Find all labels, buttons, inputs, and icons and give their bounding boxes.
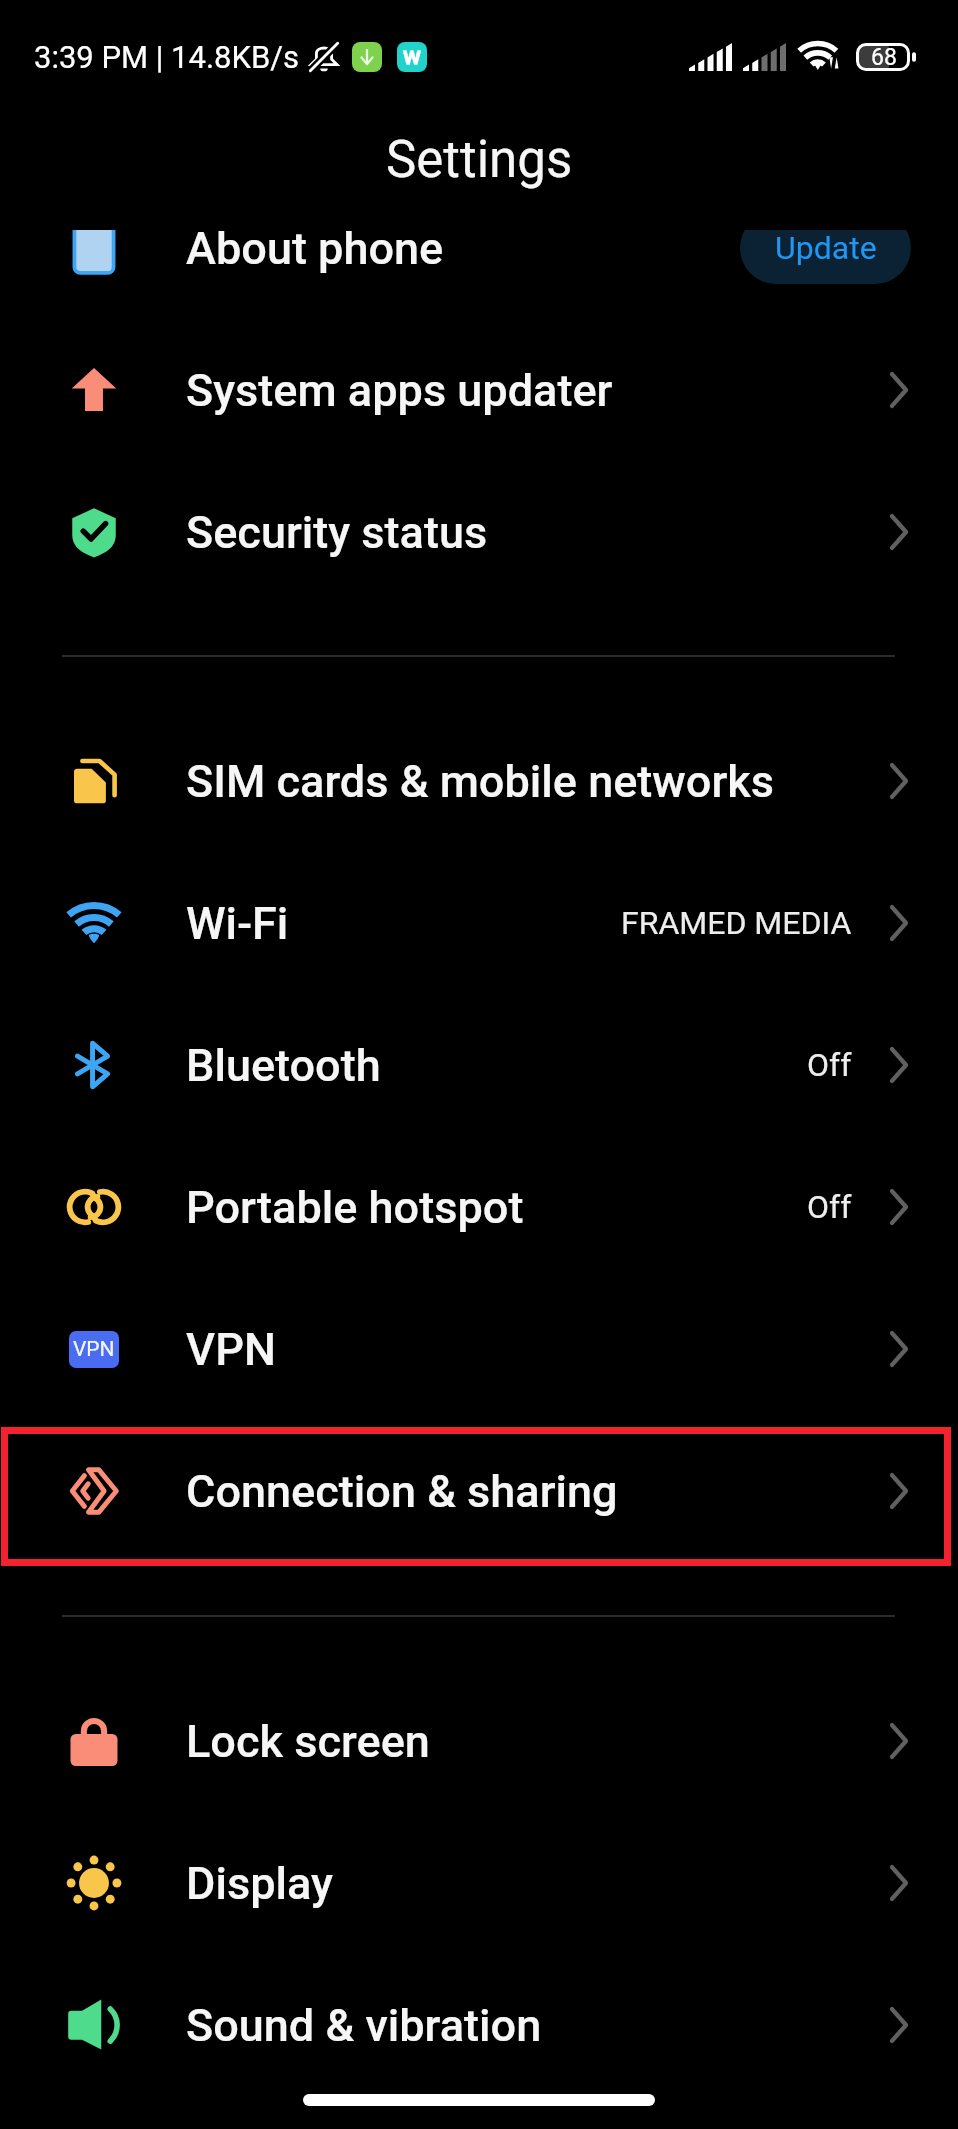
other: Silent mode [305, 38, 343, 76]
staticText: 3:39 PM | 14.8KB/s [34, 39, 300, 75]
other: Open SIM cards & mobile networks [889, 763, 909, 799]
other: Open Security status [889, 514, 909, 550]
button[interactable]: Sound & vibration [0, 1954, 958, 2096]
staticText: Display [186, 1857, 333, 1910]
other: Open Sound & vibration [889, 2007, 909, 2043]
staticText: SIM cards & mobile networks [186, 755, 774, 808]
other: Open System apps updater [889, 372, 909, 408]
button[interactable]: System apps updater [0, 319, 958, 461]
staticText: Bluetooth [186, 1039, 381, 1092]
button[interactable]: Bluetooth [0, 994, 958, 1136]
other: Open Wi-Fi [889, 905, 909, 941]
button[interactable]: Portable hotspot [0, 1136, 958, 1278]
button[interactable]: About phone [0, 230, 958, 319]
other: Open Bluetooth [889, 1047, 909, 1083]
staticText: Lock screen [186, 1715, 430, 1768]
button[interactable]: Lock screen [0, 1670, 958, 1812]
staticText: About phone [186, 230, 444, 275]
staticText: Off [807, 1188, 852, 1226]
button[interactable]: Wi-Fi [0, 852, 958, 994]
staticText: Update [775, 230, 877, 267]
staticText: Connection & sharing [186, 1465, 618, 1518]
staticText: FRAMED MEDIA [621, 904, 852, 942]
staticText: w [403, 42, 421, 70]
staticText: 68 [871, 44, 897, 71]
other: Open Display [889, 1865, 909, 1901]
other: Open VPN [889, 1331, 909, 1367]
other: Open Portable hotspot [889, 1189, 909, 1225]
staticText: Wi-Fi [186, 897, 289, 950]
button[interactable]: VPN [0, 1278, 958, 1420]
staticText: Sound & vibration [186, 1999, 542, 2052]
other: Open Connection & sharing [889, 1473, 909, 1509]
staticText: Security status [186, 506, 488, 559]
staticText: System apps updater [186, 364, 613, 417]
staticText: VPN [186, 1323, 276, 1376]
button[interactable]: Update [740, 230, 911, 284]
button[interactable]: Connection & sharing [0, 1420, 958, 1562]
staticText: VPN [73, 1337, 115, 1362]
staticText: Off [807, 1046, 852, 1084]
staticText: Portable hotspot [186, 1181, 524, 1234]
button[interactable]: Security status [0, 461, 958, 603]
button[interactable]: SIM cards & mobile networks [0, 710, 958, 852]
staticText: Settings [386, 130, 573, 190]
other: Open Lock screen [889, 1723, 909, 1759]
button[interactable]: Display [0, 1812, 958, 1954]
